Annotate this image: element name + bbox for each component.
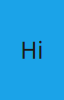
staticText: Hi	[20, 35, 43, 65]
